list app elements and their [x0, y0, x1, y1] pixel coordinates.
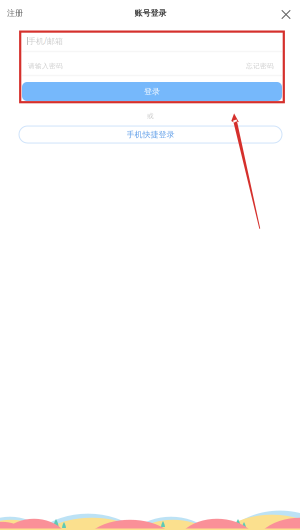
- button[interactable]: 手机快捷登录: [19, 126, 282, 143]
- button[interactable]: 登录: [22, 82, 282, 101]
- staticText: 请输入密码: [28, 62, 63, 70]
- button[interactable]: Close: [275, 3, 297, 25]
- staticText: 忘记密码: [246, 62, 274, 70]
- staticText: 注册: [7, 8, 23, 18]
- staticText: 登录: [144, 87, 160, 96]
- staticText: 手机快捷登录: [126, 130, 174, 139]
- staticText: 或: [147, 112, 154, 120]
- staticText: 手机/邮箱: [28, 36, 63, 46]
- button[interactable]: 忘记密码: [226, 58, 274, 74]
- staticText: 账号登录: [134, 8, 166, 18]
- button[interactable]: 注册: [7, 2, 33, 24]
